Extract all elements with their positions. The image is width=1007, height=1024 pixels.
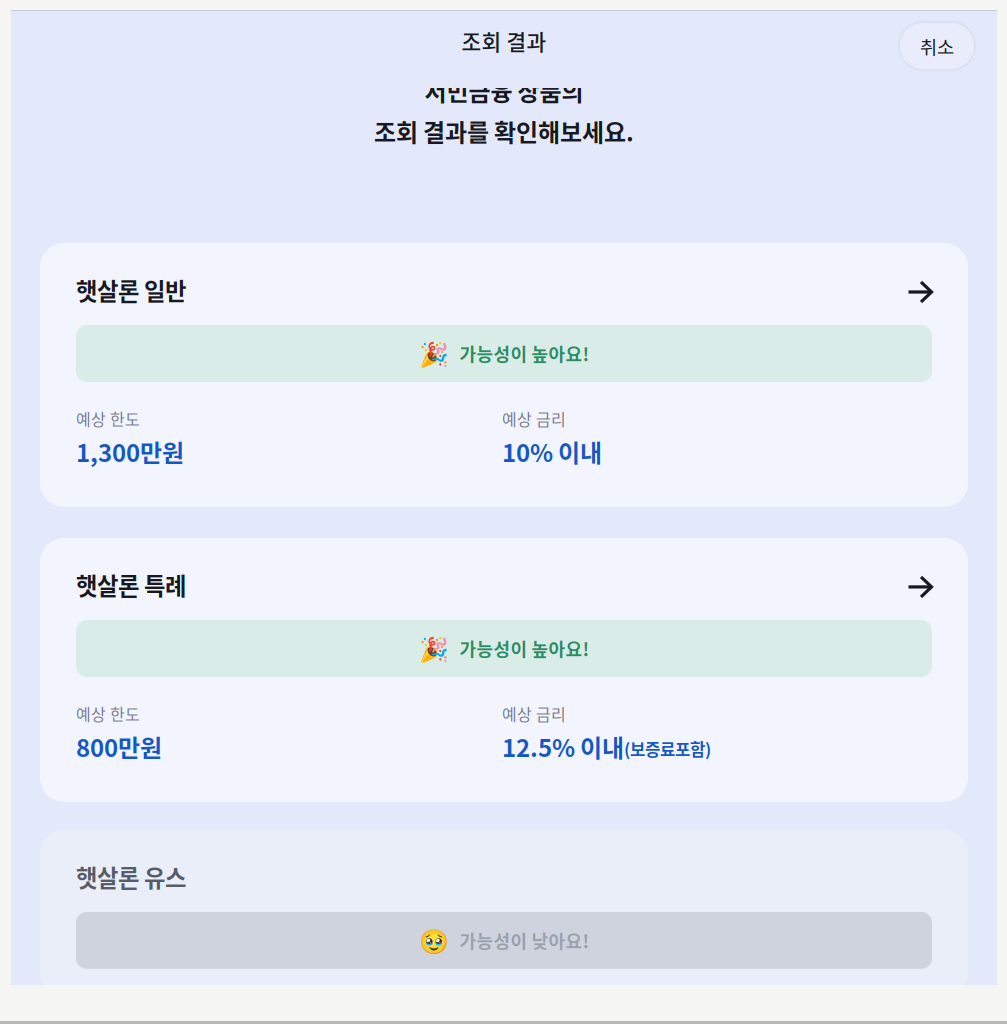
staticText: 햇살론 유스 [76,860,186,894]
staticText: 🎉 [418,635,448,663]
staticText: (보증료포함) [624,737,711,761]
staticText: 800만원 [76,729,162,764]
staticText: 10% 이내 [502,434,602,469]
staticText: 가능성이 낮아요! [459,927,589,953]
staticText: 예상 한도 [76,407,140,430]
staticText: 햇살론 일반 [76,273,186,307]
staticText: 1,300만원 [76,434,184,469]
staticText: 취소 [920,32,954,59]
staticText: 🥹 [418,927,448,955]
button[interactable]: 취소 [899,22,975,70]
staticText: 예상 금리 [502,702,566,725]
button[interactable]: 햇살론 특례 [40,538,968,802]
staticText: 햇살론 특례 [76,568,186,602]
staticText: 조회 결과 [461,26,546,56]
staticText: 가능성이 높아요! [459,635,589,661]
staticText: 예상 한도 [76,702,140,725]
staticText: 서민금융 상품의 [424,73,583,108]
staticText: 조회 결과를 확인해보세요. [374,114,634,149]
staticText: 예상 금리 [502,407,566,430]
button[interactable]: 햇살론 유스 [40,830,968,996]
staticText: 가능성이 높아요! [459,340,589,367]
button[interactable]: 햇살론 일반 [40,243,968,507]
staticText: 🎉 [418,340,448,368]
staticText: 12.5% 이내 [502,729,624,764]
